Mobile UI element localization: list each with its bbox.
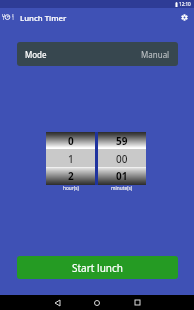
staticText: Start lunch [72,261,123,275]
staticText: 2 [68,169,74,183]
staticText: Mode [25,49,47,60]
staticText: Manual [141,49,170,60]
staticText: minute(s) [111,185,133,192]
staticText: 01 [116,169,128,183]
button[interactable]: Start lunch [17,256,178,279]
button[interactable]: Mode [17,42,178,66]
staticText: 59 [116,134,128,148]
staticText: 12:10 [179,1,191,7]
staticText: hour(s) [63,185,79,192]
staticText: 0 [68,134,74,148]
staticText: Lunch Timer [20,13,67,24]
button[interactable]: Back [48,295,66,310]
button[interactable]: Settings [175,8,193,26]
button[interactable]: 59 [98,132,146,185]
button[interactable]: Recents [128,295,146,310]
button[interactable]: 0 [46,132,95,185]
staticText: 00 [116,152,128,166]
button[interactable]: Home [88,295,106,310]
staticText: 1 [68,152,74,166]
